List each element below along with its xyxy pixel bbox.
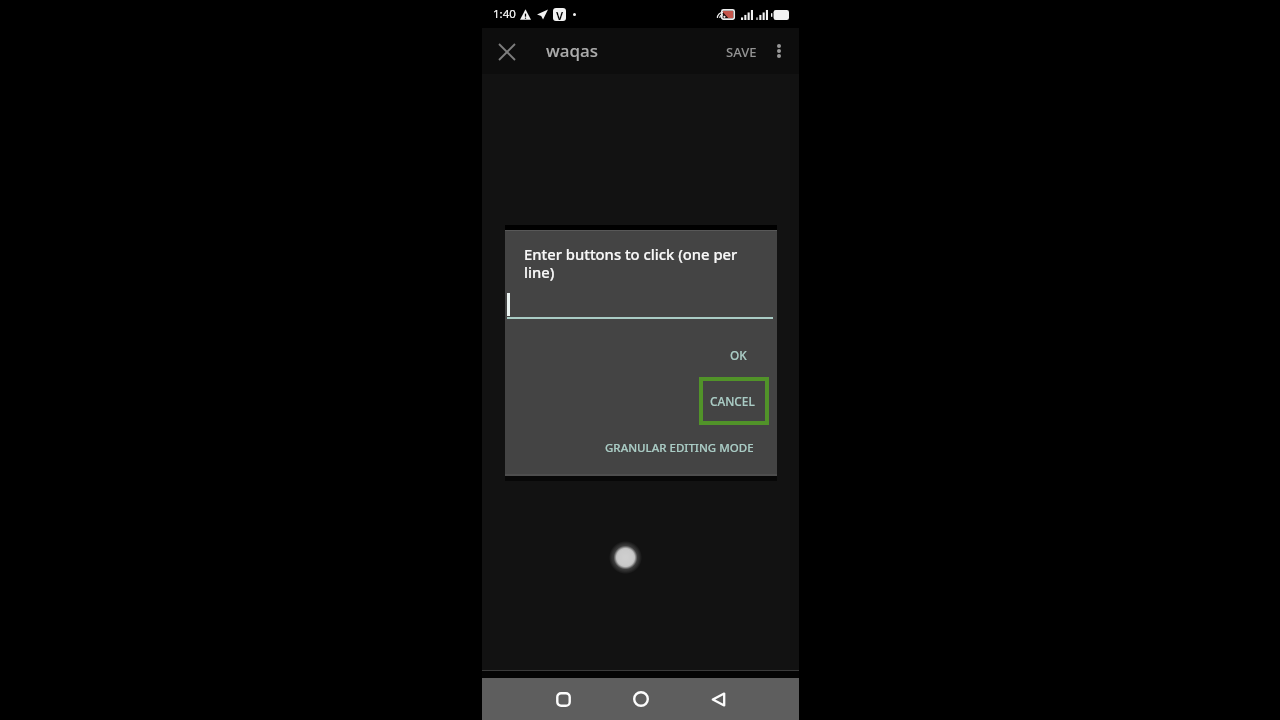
button[interactable]: More options [765, 37, 793, 65]
staticText: V [556, 8, 564, 21]
button[interactable]: OK [709, 340, 767, 370]
button[interactable]: Close [491, 36, 522, 67]
staticText: OK [730, 347, 747, 363]
staticText: SAVE [726, 43, 757, 61]
staticText: waqas [546, 39, 598, 62]
staticText: GRANULAR EDITING MODE [605, 440, 754, 456]
staticText: Enter buttons to click (one per line) [524, 244, 744, 282]
staticText: CANCEL [710, 393, 755, 409]
button[interactable]: Home [618, 678, 663, 720]
button[interactable]: SAVE [718, 34, 765, 70]
button[interactable]: Recent apps [541, 678, 586, 720]
button[interactable]: CANCEL [699, 377, 769, 425]
staticText: 1:40 [493, 6, 516, 22]
button[interactable]: GRANULAR EDITING MODE [596, 433, 762, 463]
button[interactable]: Text input field [507, 285, 773, 319]
button[interactable]: Back [696, 678, 741, 720]
